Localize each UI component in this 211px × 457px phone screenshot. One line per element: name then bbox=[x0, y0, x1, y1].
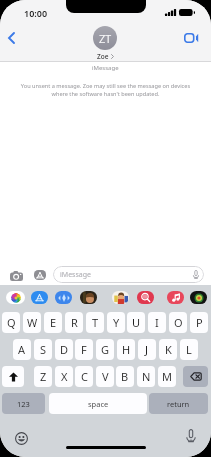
staticText: L bbox=[186, 342, 192, 357]
button[interactable]: P bbox=[190, 312, 208, 333]
staticText: 10:00 bbox=[24, 7, 48, 19]
staticText: N bbox=[142, 369, 151, 384]
button[interactable]: R bbox=[65, 312, 83, 333]
staticText: U bbox=[132, 315, 141, 330]
staticText: 123 bbox=[17, 399, 30, 409]
button[interactable]: G bbox=[96, 339, 114, 360]
staticText: O bbox=[174, 315, 183, 330]
staticText: C bbox=[81, 369, 88, 384]
button[interactable]: U bbox=[127, 312, 145, 333]
button[interactable]: App Store bbox=[31, 266, 49, 284]
button[interactable]: N bbox=[137, 366, 155, 387]
button[interactable]: Music bbox=[167, 291, 184, 304]
staticText: A bbox=[18, 342, 26, 357]
button[interactable]: More apps bbox=[190, 291, 207, 304]
button[interactable]: B bbox=[116, 366, 134, 387]
staticText: space bbox=[88, 399, 109, 409]
staticText: T bbox=[92, 315, 99, 330]
button[interactable]: Shift bbox=[2, 366, 24, 387]
staticText: G bbox=[101, 342, 110, 357]
staticText: Q bbox=[7, 315, 16, 330]
staticText: S bbox=[40, 342, 47, 357]
button[interactable]: iMessage bbox=[53, 266, 204, 283]
button[interactable]: FaceTime video call bbox=[182, 29, 200, 47]
button[interactable]: X bbox=[55, 366, 73, 387]
button[interactable]: Q bbox=[2, 312, 20, 333]
button[interactable]: Camera bbox=[6, 266, 26, 286]
button[interactable]: Y bbox=[107, 312, 125, 333]
button[interactable]: Z bbox=[34, 366, 52, 387]
staticText: R bbox=[71, 315, 78, 330]
button[interactable]: Back bbox=[3, 29, 20, 46]
staticText: iMessage bbox=[92, 64, 119, 72]
staticText: ZT bbox=[99, 31, 112, 46]
button[interactable]: Photos bbox=[6, 291, 25, 304]
button[interactable]: 123 bbox=[2, 393, 45, 414]
button[interactable]: ZT bbox=[84, 26, 126, 61]
staticText: P bbox=[196, 315, 203, 330]
staticText: M bbox=[162, 369, 172, 384]
button[interactable]: L bbox=[180, 339, 198, 360]
button[interactable]: O bbox=[169, 312, 187, 333]
staticText: I bbox=[155, 315, 159, 330]
button[interactable]: space bbox=[49, 393, 147, 414]
button[interactable]: Memoji bbox=[80, 291, 97, 304]
button[interactable]: App Store bbox=[31, 291, 48, 304]
staticText: X bbox=[61, 369, 68, 384]
staticText: W bbox=[27, 315, 38, 330]
button[interactable]: A bbox=[13, 339, 31, 360]
staticText: J bbox=[145, 342, 149, 357]
button[interactable]: Digital Touch bbox=[55, 291, 72, 304]
button[interactable]: W bbox=[23, 312, 41, 333]
button[interactable]: Memoji sticker bbox=[112, 291, 129, 304]
staticText: B bbox=[121, 369, 129, 384]
staticText: D bbox=[60, 342, 69, 357]
staticText: F bbox=[81, 342, 87, 357]
button[interactable]: C bbox=[75, 366, 93, 387]
button[interactable]: S bbox=[34, 339, 52, 360]
staticText: Z bbox=[40, 369, 47, 384]
staticText: iMessage bbox=[60, 270, 91, 280]
button[interactable]: D bbox=[55, 339, 73, 360]
button[interactable]: T bbox=[86, 312, 104, 333]
button[interactable]: M bbox=[158, 366, 176, 387]
button[interactable]: K bbox=[159, 339, 177, 360]
button[interactable]: E bbox=[44, 312, 62, 333]
staticText: Y bbox=[113, 315, 120, 330]
button[interactable]: return bbox=[149, 393, 208, 414]
button[interactable]: H bbox=[117, 339, 135, 360]
staticText: Zoe bbox=[97, 52, 109, 61]
button[interactable]: Emoji keyboard bbox=[14, 431, 28, 445]
staticText: return bbox=[167, 399, 190, 409]
staticText: E bbox=[50, 315, 57, 330]
staticText: You unsent a message. Zoe may still see … bbox=[18, 82, 193, 98]
button[interactable]: F bbox=[75, 339, 93, 360]
button[interactable]: Images bbox=[137, 291, 154, 304]
button[interactable]: V bbox=[96, 366, 114, 387]
staticText: H bbox=[122, 342, 131, 357]
button[interactable]: Dictation bbox=[184, 429, 197, 442]
staticText: K bbox=[165, 342, 172, 357]
button[interactable]: Backspace bbox=[183, 366, 208, 387]
button[interactable]: I bbox=[148, 312, 166, 333]
button[interactable]: J bbox=[138, 339, 156, 360]
staticText: V bbox=[102, 369, 109, 384]
